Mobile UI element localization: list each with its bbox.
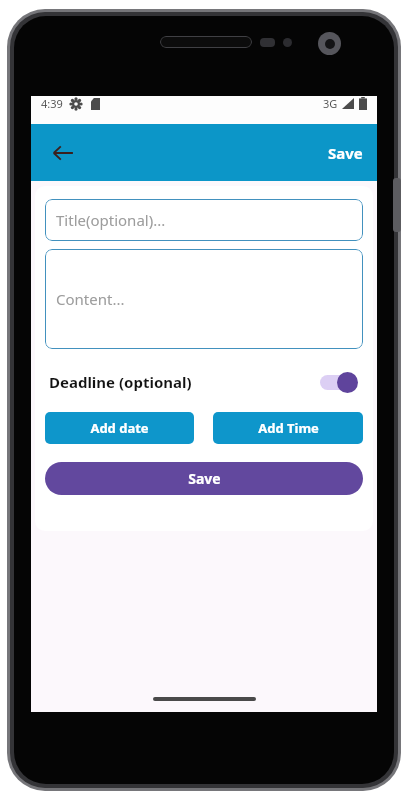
button[interactable]: Back (42, 132, 84, 174)
button[interactable]: Title(optional)... (45, 199, 363, 241)
staticText: Content... (56, 289, 125, 309)
staticText: 4:39 (41, 96, 63, 111)
staticText: 3G (323, 96, 338, 111)
button[interactable]: Add Time (213, 412, 363, 444)
button[interactable]: Save (314, 133, 377, 173)
button[interactable]: Add date (45, 412, 194, 444)
button[interactable]: Save (45, 462, 363, 495)
staticText: Add Time (258, 419, 319, 437)
button[interactable]: Deadline toggle (319, 370, 359, 394)
staticText: Save (328, 143, 363, 163)
staticText: Title(optional)... (56, 210, 166, 230)
button[interactable]: Deadline (optional) (45, 365, 363, 399)
button[interactable]: Content... (45, 249, 363, 349)
staticText: Add date (90, 419, 149, 437)
staticText: Deadline (optional) (49, 372, 192, 392)
staticText: Save (188, 469, 221, 488)
